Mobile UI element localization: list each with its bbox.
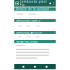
staticText: DATOS DEL CLIENTE <box>16 19 40 22</box>
button[interactable]: Search <box>49 1 52 5</box>
button[interactable]: Recent apps <box>44 64 49 69</box>
staticText: Cambios de plan/Pro <box>20 0 47 7</box>
button[interactable]: Open navigation menu <box>14 0 20 7</box>
staticText: DATOS DEL SERVICIO <box>16 31 42 34</box>
button[interactable]: Home <box>33 64 37 69</box>
staticText: Detalle de la solicitud <box>16 7 49 11</box>
staticText: OBSERVACIONES <box>16 40 37 43</box>
button[interactable]: Back <box>21 64 26 69</box>
button[interactable]: More options <box>52 1 56 6</box>
